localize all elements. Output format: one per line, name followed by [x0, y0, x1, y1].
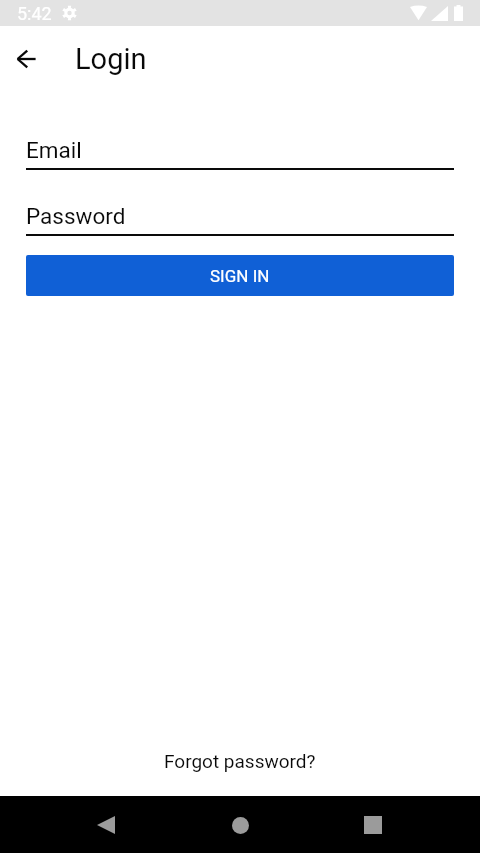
button[interactable]: Email	[26, 137, 454, 170]
staticText: 5:42	[17, 3, 52, 24]
staticText: SIGN IN	[210, 266, 270, 286]
button[interactable]: Recent apps	[349, 801, 397, 849]
button[interactable]: Forgot password?	[0, 741, 480, 781]
staticText: Forgot password?	[164, 750, 316, 772]
button[interactable]: Navigate up	[6, 39, 46, 79]
button[interactable]: Password	[26, 203, 454, 236]
button[interactable]: SIGN IN	[26, 255, 454, 296]
button[interactable]: Back	[82, 801, 130, 849]
staticText: Password	[26, 203, 126, 229]
staticText: Login	[75, 42, 147, 76]
button[interactable]: Home	[216, 801, 264, 849]
staticText: Email	[26, 137, 82, 163]
